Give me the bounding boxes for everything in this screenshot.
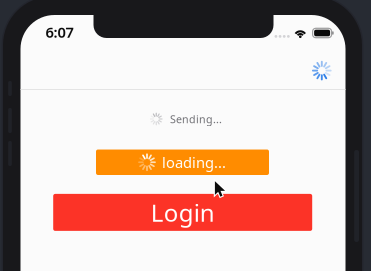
button[interactable]: Login [53,194,312,231]
staticText: Login [151,196,215,228]
button[interactable]: Loading [306,55,338,87]
button[interactable]: loading... [96,149,269,175]
staticText: loading... [162,152,226,172]
staticText: Sending... [170,112,222,126]
staticText: 6:07 [45,22,73,42]
